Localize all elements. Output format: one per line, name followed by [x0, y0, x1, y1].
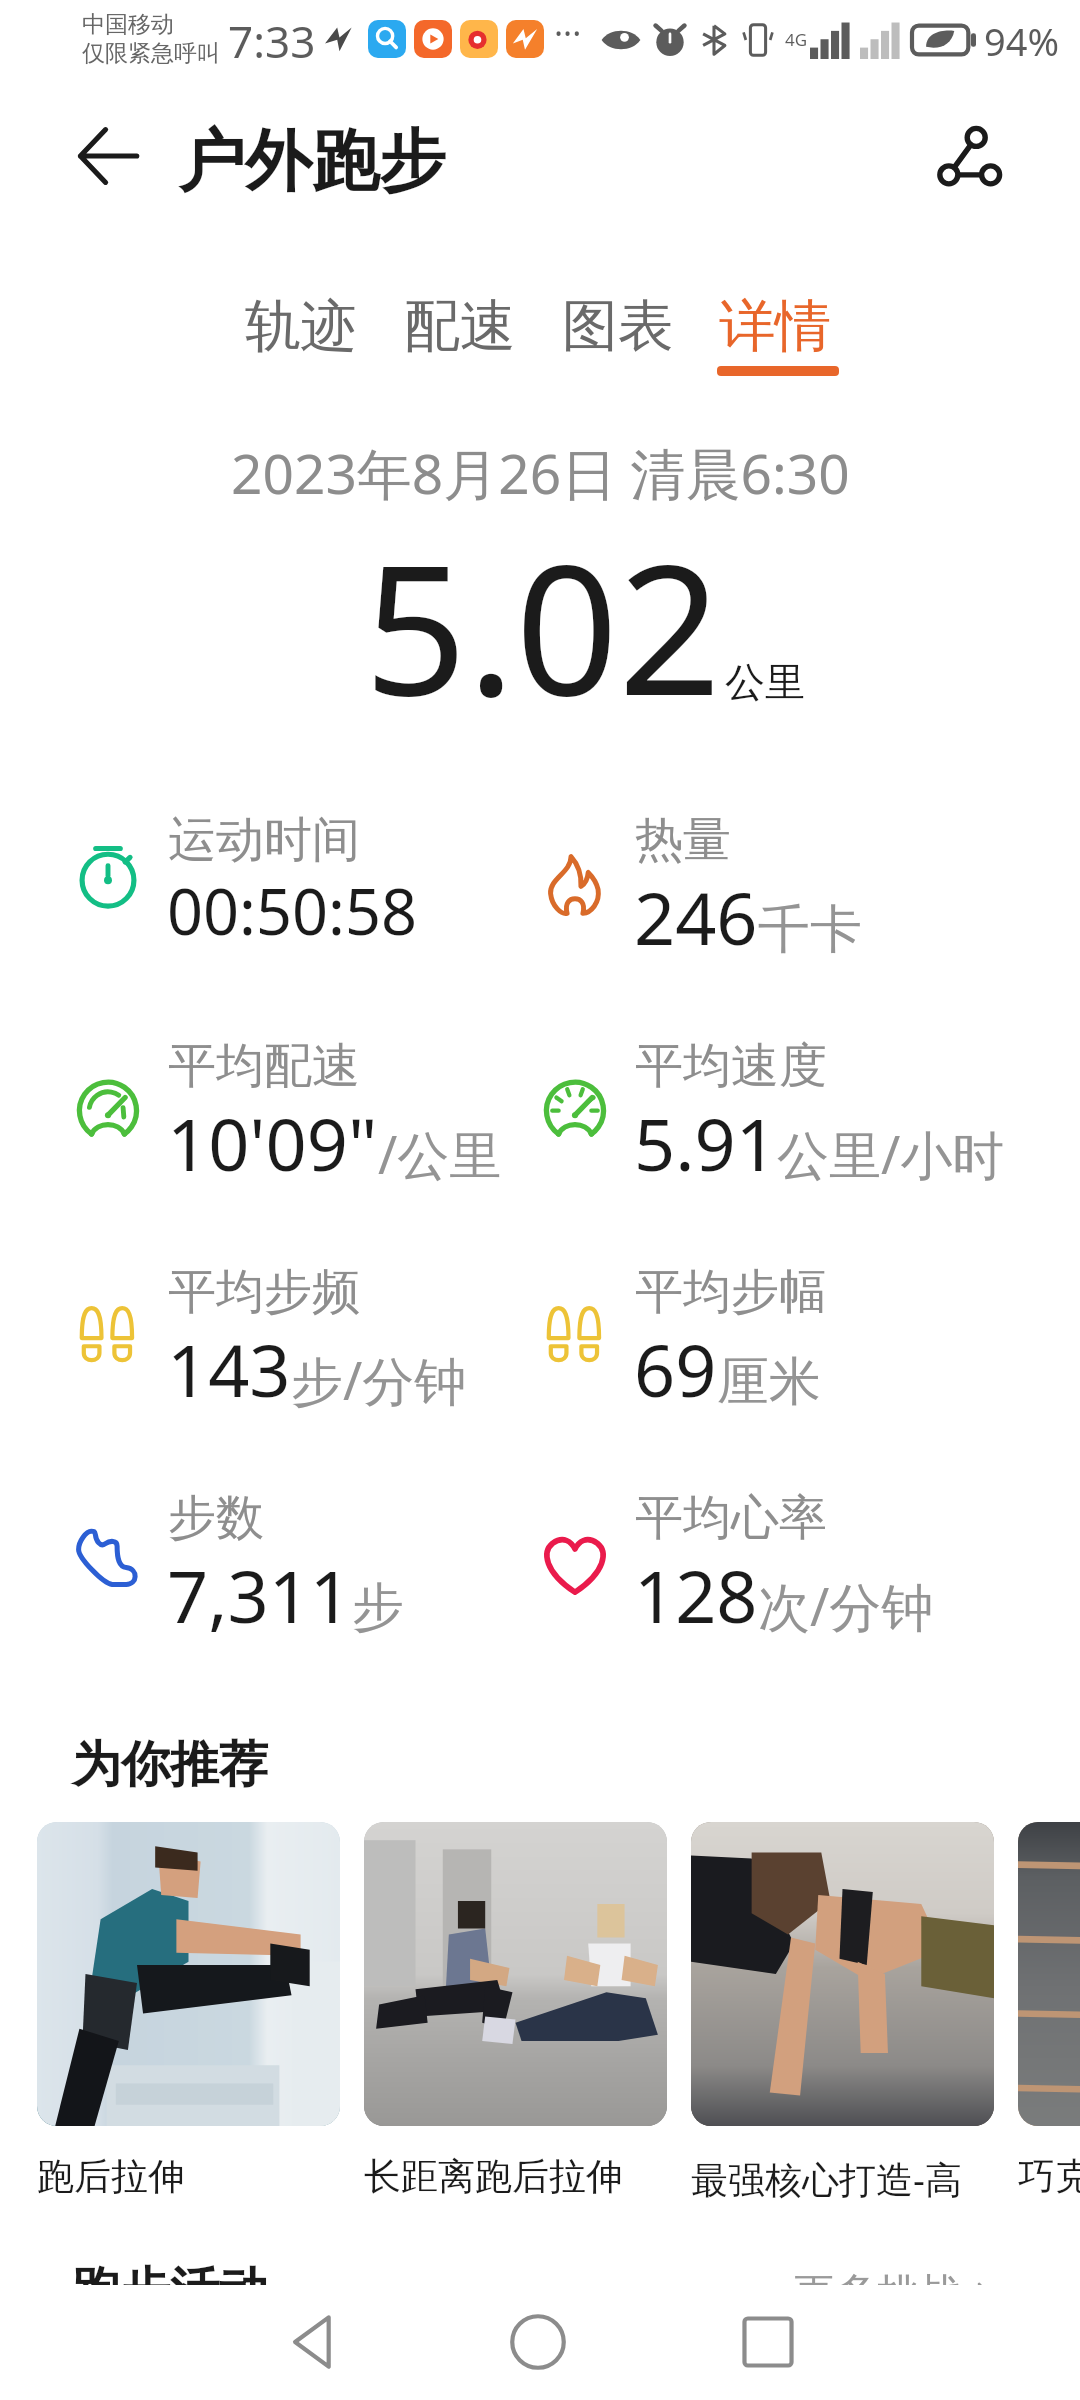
staticText: 户外跑步 — [178, 119, 446, 203]
staticText: 7,311 — [167, 1546, 352, 1644]
button[interactable]: 轨迹 — [231, 281, 371, 393]
staticText: 步数 — [168, 1488, 264, 1548]
button[interactable]: 平均心率 — [545, 1488, 1025, 1628]
staticText: 平均配速 — [168, 1036, 360, 1096]
staticText: 图表 — [562, 291, 674, 362]
button[interactable]: 热量 — [545, 810, 1025, 950]
button[interactable]: 详情 — [705, 281, 845, 393]
button[interactable]: Recents — [723, 2297, 813, 2387]
staticText: 运动时间 — [168, 810, 360, 870]
staticText: 平均步频 — [168, 1262, 360, 1322]
button[interactable]: 图表 — [548, 281, 688, 393]
button[interactable]: Share — [931, 121, 1007, 197]
staticText: 详情 — [719, 291, 831, 362]
staticText: 平均步幅 — [635, 1262, 827, 1322]
staticText: 94% — [984, 15, 1060, 67]
staticText: 128 — [634, 1546, 758, 1644]
staticText: 仅限紧急呼叫 — [82, 39, 220, 68]
staticText: 热量 — [635, 810, 731, 870]
staticText: 公里/小时 — [777, 1118, 1005, 1189]
staticText: 配速 — [404, 291, 516, 362]
staticText: 最强核心打造-高 — [691, 2153, 962, 2204]
staticText: 厘米 — [717, 1349, 821, 1415]
staticText: 246 — [634, 868, 758, 966]
staticText: 步 — [352, 1575, 404, 1641]
button[interactable]: 平均步幅 — [545, 1262, 1025, 1402]
button[interactable]: 运动时间 — [78, 810, 558, 950]
staticText: 为你推荐 — [72, 1734, 268, 1796]
staticText: 轨迹 — [245, 291, 357, 362]
staticText: 平均心率 — [635, 1488, 827, 1548]
staticText: 平均速度 — [635, 1036, 827, 1096]
staticText: 7:33 — [228, 11, 316, 71]
button[interactable]: 步数 — [78, 1488, 558, 1628]
staticText: 5.02 — [364, 503, 722, 748]
button[interactable]: 巧克 — [1018, 1822, 1080, 2200]
staticText: 步/分钟 — [291, 1344, 467, 1415]
button[interactable]: 跑后拉伸 — [37, 1822, 340, 2200]
staticText: 4G — [785, 28, 808, 51]
button[interactable]: 更多挑战 — [793, 2268, 999, 2321]
staticText: ··· — [554, 10, 582, 56]
staticText: 143 — [167, 1320, 291, 1418]
staticText: 5.91 — [634, 1094, 777, 1192]
staticText: 中国移动 — [82, 10, 174, 39]
staticText: 跑步活动 — [72, 2260, 268, 2322]
staticText: /公里 — [378, 1118, 502, 1189]
button[interactable]: Home — [493, 2297, 583, 2387]
staticText: 69 — [634, 1320, 717, 1418]
staticText: 00:50:58 — [167, 868, 417, 954]
staticText: 巧克 — [1018, 2153, 1080, 2200]
staticText: 长距离跑后拉伸 — [364, 2153, 623, 2200]
staticText: 更多挑战 — [793, 2268, 961, 2321]
staticText: 公里 — [725, 657, 805, 707]
staticText: 2023年8月26日 清晨6:30 — [231, 435, 850, 510]
button[interactable]: Back — [268, 2297, 358, 2387]
button[interactable]: 平均速度 — [545, 1036, 1025, 1176]
staticText: 千卡 — [758, 897, 862, 963]
button[interactable]: 平均步频 — [78, 1262, 558, 1402]
button[interactable]: 配速 — [390, 281, 530, 393]
staticText: 次/分钟 — [758, 1570, 934, 1641]
button[interactable]: Back — [77, 125, 139, 187]
button[interactable]: 长距离跑后拉伸 — [364, 1822, 667, 2200]
button[interactable]: 平均配速 — [78, 1036, 558, 1176]
staticText: 10'09" — [167, 1094, 378, 1192]
button[interactable]: 最强核心打造-高 — [691, 1822, 994, 2204]
staticText: 跑后拉伸 — [37, 2153, 185, 2200]
